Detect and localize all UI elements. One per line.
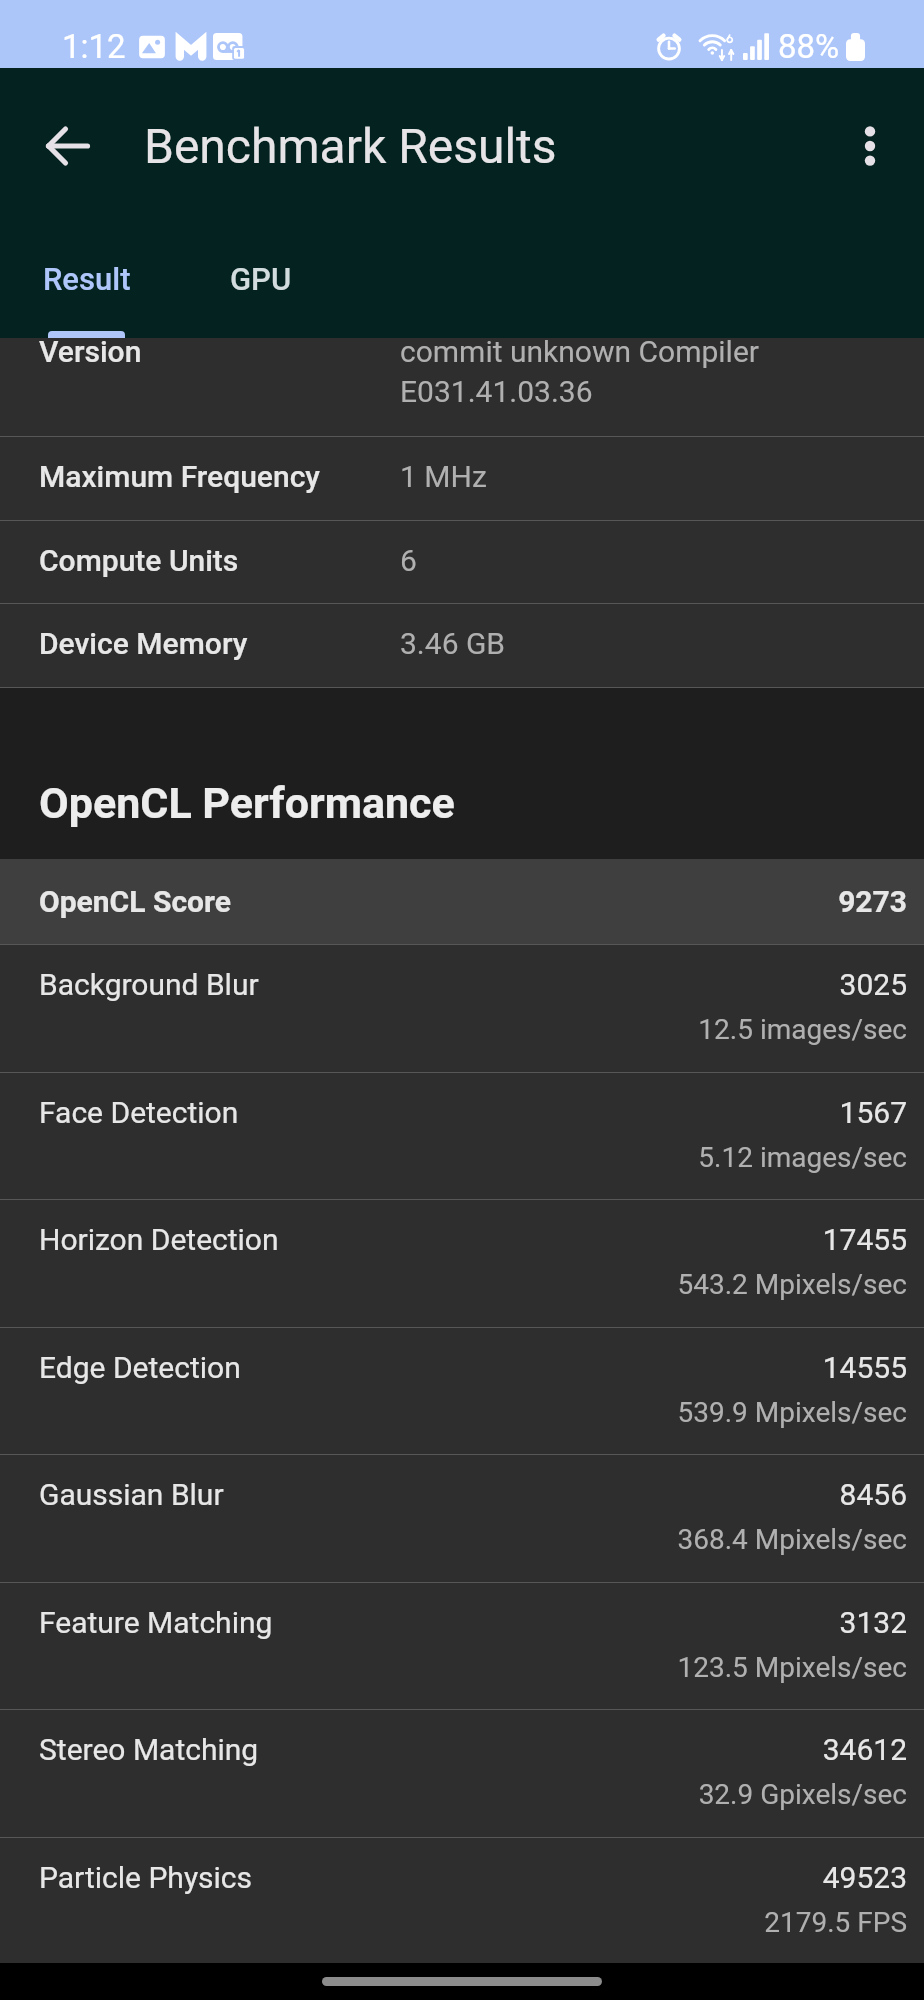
staticText: 32.9 Gpixels/sec bbox=[698, 1778, 907, 1811]
button[interactable]: GPU bbox=[173, 238, 348, 338]
staticText: 17455 bbox=[822, 1222, 907, 1257]
staticText: 88% bbox=[778, 27, 840, 66]
staticText: Feature Matching bbox=[39, 1605, 273, 1640]
button[interactable]: Device Memory bbox=[0, 604, 924, 688]
button[interactable]: Particle Physics bbox=[0, 1838, 924, 1965]
staticText: 1567 bbox=[839, 1095, 907, 1130]
staticText: OpenCL Score bbox=[39, 884, 231, 919]
staticText: Result bbox=[43, 261, 131, 297]
staticText: 49523 bbox=[822, 1860, 907, 1895]
staticText: Maximum Frequency bbox=[39, 459, 320, 494]
staticText: Particle Physics bbox=[39, 1860, 253, 1895]
staticText: OpenCL Performance bbox=[39, 778, 455, 828]
button[interactable]: Result bbox=[0, 238, 173, 338]
button[interactable]: Feature Matching bbox=[0, 1583, 924, 1710]
button[interactable]: Maximum Frequency bbox=[0, 437, 924, 521]
staticText: 12.5 images/sec bbox=[698, 1013, 907, 1046]
button[interactable]: More options bbox=[832, 108, 908, 184]
staticText: Gaussian Blur bbox=[39, 1477, 224, 1512]
staticText: 3.46 GB bbox=[400, 626, 506, 661]
staticText: 539.9 Mpixels/sec bbox=[677, 1396, 907, 1429]
button[interactable]: Stereo Matching bbox=[0, 1710, 924, 1838]
staticText: 1 MHz bbox=[400, 459, 487, 494]
button[interactable]: Home bbox=[322, 1977, 602, 1986]
staticText: Edge Detection bbox=[39, 1350, 241, 1385]
button[interactable]: Horizon Detection bbox=[0, 1200, 924, 1328]
staticText: 543.2 Mpixels/sec bbox=[677, 1268, 907, 1301]
staticText: 1:12 bbox=[62, 27, 126, 66]
staticText: GPU bbox=[230, 261, 292, 297]
button[interactable]: Edge Detection bbox=[0, 1328, 924, 1455]
staticText: Device Memory bbox=[39, 626, 248, 661]
button[interactable]: Face Detection bbox=[0, 1073, 924, 1200]
staticText: 8456 bbox=[839, 1477, 907, 1512]
staticText: 14555 bbox=[822, 1350, 907, 1385]
staticText: 2179.5 FPS bbox=[764, 1906, 907, 1939]
staticText: Horizon Detection bbox=[39, 1222, 279, 1257]
staticText: Version bbox=[39, 334, 142, 369]
button[interactable]: Background Blur bbox=[0, 945, 924, 1073]
staticText: 6 bbox=[400, 543, 417, 578]
staticText: 123.5 Mpixels/sec bbox=[677, 1651, 907, 1684]
staticText: commit unknown Compiler E031.41.03.36 bbox=[400, 334, 759, 410]
button[interactable]: Version bbox=[0, 338, 924, 437]
staticText: Background Blur bbox=[39, 967, 259, 1002]
staticText: 34612 bbox=[822, 1732, 907, 1767]
staticText: 3132 bbox=[839, 1605, 907, 1640]
staticText: Face Detection bbox=[39, 1095, 239, 1130]
staticText: Compute Units bbox=[39, 543, 239, 578]
staticText: 3025 bbox=[839, 967, 907, 1002]
staticText: Stereo Matching bbox=[39, 1732, 259, 1767]
button[interactable]: Compute Units bbox=[0, 521, 924, 604]
button[interactable]: Navigate back bbox=[25, 103, 111, 189]
staticText: 9273 bbox=[838, 884, 907, 919]
staticText: 5.12 images/sec bbox=[698, 1141, 907, 1174]
staticText: Benchmark Results bbox=[144, 118, 557, 174]
button[interactable]: OpenCL Score bbox=[0, 859, 924, 945]
staticText: 368.4 Mpixels/sec bbox=[677, 1523, 907, 1556]
button[interactable]: Gaussian Blur bbox=[0, 1455, 924, 1583]
